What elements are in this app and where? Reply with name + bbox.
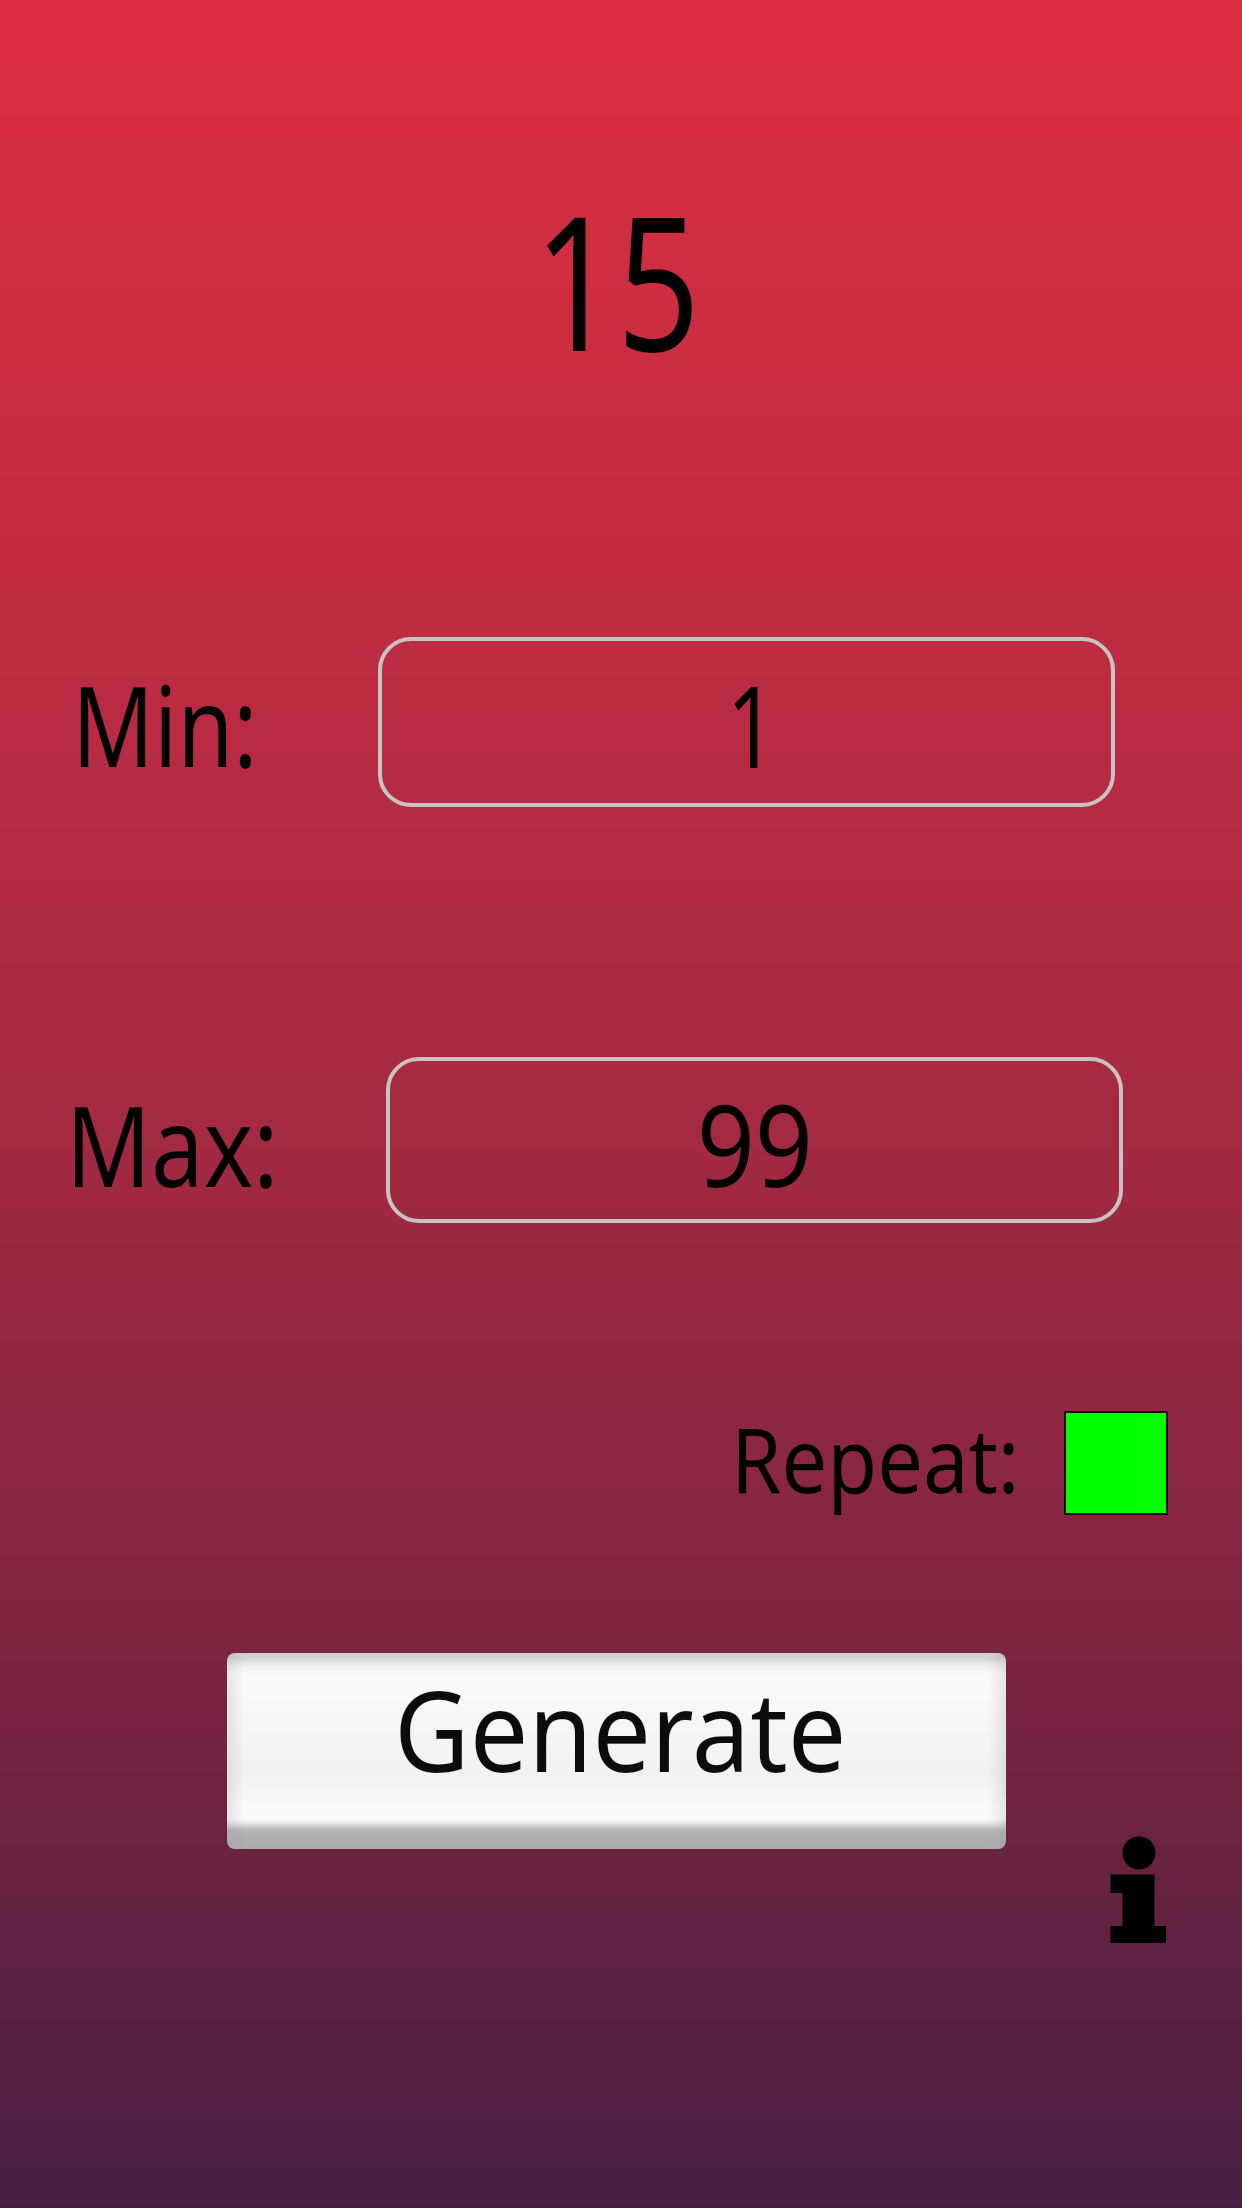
button[interactable]: Info	[1082, 1812, 1238, 1968]
staticText: 99	[697, 1066, 813, 1220]
button[interactable]: Generate	[227, 1653, 1006, 1849]
staticText: Generate	[394, 1653, 846, 1805]
button[interactable]: Minimum value	[378, 637, 1115, 807]
staticText: Repeat:	[731, 1397, 1020, 1520]
staticText: Min:	[72, 648, 258, 799]
staticText: 1	[726, 647, 777, 802]
staticText: 15	[534, 152, 701, 406]
staticText: Max:	[66, 1068, 279, 1219]
button[interactable]: Repeat toggle	[1064, 1411, 1168, 1515]
button[interactable]: Maximum value	[386, 1057, 1123, 1223]
